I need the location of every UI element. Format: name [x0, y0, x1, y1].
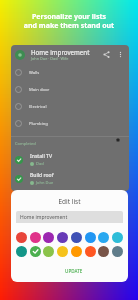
other: Share: [102, 50, 111, 59]
button[interactable]: [43, 246, 54, 257]
button[interactable]: [112, 232, 123, 243]
staticText: Dad: [36, 161, 44, 166]
staticText: Install TV: [30, 153, 52, 160]
staticText: Plumbing: [29, 121, 48, 127]
staticText: Walls: [29, 70, 40, 76]
staticText: Electrical: [29, 104, 47, 110]
button[interactable]: [98, 232, 109, 243]
button[interactable]: [30, 246, 41, 257]
button[interactable]: [98, 246, 109, 257]
staticText: Personalize your lists and make them sta…: [0, 12, 138, 30]
button[interactable]: Build roof: [11, 169, 129, 188]
staticText: Home improvement: [31, 48, 90, 56]
button[interactable]: Home improvement: [16, 211, 123, 223]
button[interactable]: [71, 246, 82, 257]
other: Add item: [115, 137, 121, 143]
staticText: Main door: [29, 87, 50, 93]
staticText: John Due: [36, 180, 54, 185]
button[interactable]: [85, 232, 96, 243]
button[interactable]: Install TV: [11, 150, 129, 169]
other: More options: [116, 50, 125, 59]
staticText: Build roof: [30, 172, 54, 179]
button[interactable]: [71, 232, 82, 243]
button[interactable]: [57, 246, 68, 257]
staticText: UPDATE: [65, 268, 83, 274]
button[interactable]: Plumbing: [11, 115, 129, 132]
button[interactable]: [112, 246, 123, 257]
button[interactable]: Walls: [11, 64, 129, 81]
button[interactable]: UPDATE: [61, 267, 87, 275]
button[interactable]: [30, 232, 41, 243]
button[interactable]: [16, 232, 27, 243]
button[interactable]: [85, 246, 96, 257]
button[interactable]: Main door: [11, 81, 129, 98]
staticText: Completed: [15, 141, 36, 146]
staticText: Home improvement: [20, 214, 68, 221]
button[interactable]: [43, 232, 54, 243]
button[interactable]: [16, 246, 27, 257]
staticText: John Due · Dad · Wife: [31, 56, 69, 61]
staticText: Edit list: [11, 197, 128, 206]
button[interactable]: [57, 232, 68, 243]
button[interactable]: Electrical: [11, 98, 129, 115]
